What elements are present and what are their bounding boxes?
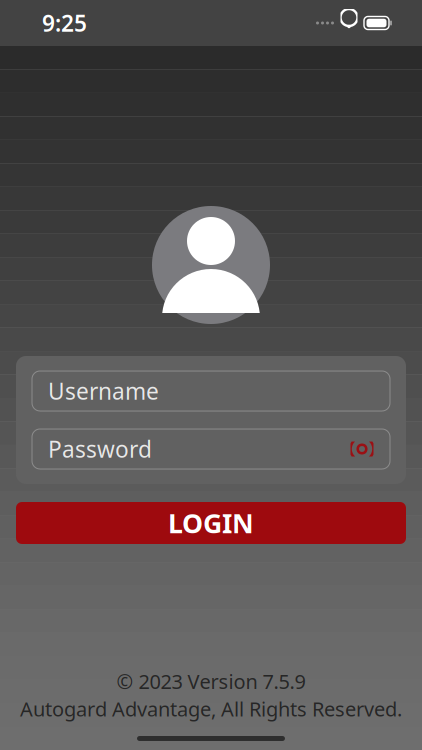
staticText: 9:25	[42, 8, 87, 38]
staticText: Username	[48, 376, 159, 406]
button[interactable]: Username	[32, 371, 390, 411]
button[interactable]: Password	[32, 429, 390, 469]
staticText: LOGIN	[168, 505, 254, 541]
button[interactable]: LOGIN	[16, 502, 406, 544]
staticText: © 2023 Version 7.5.9	[116, 668, 305, 694]
staticText: Autogard Advantage, All Rights Reserved.	[20, 695, 402, 722]
staticText: Password	[48, 434, 152, 464]
